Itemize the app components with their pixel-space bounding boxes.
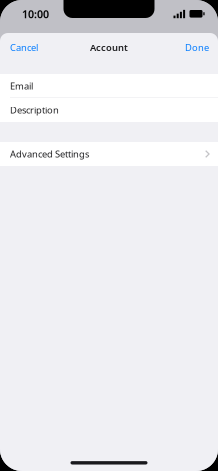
button[interactable]: Advanced Settings (0, 142, 218, 166)
staticText: Description (10, 104, 59, 116)
staticText: Cancel (10, 41, 38, 54)
button[interactable]: Done (176, 35, 218, 60)
button[interactable]: Email (0, 74, 218, 98)
button[interactable]: Cancel (0, 35, 48, 60)
staticText: Advanced Settings (10, 148, 89, 160)
staticText: Email (10, 80, 33, 92)
staticText: Done (185, 41, 209, 54)
staticText: 10:00 (22, 7, 49, 21)
button[interactable]: Description (0, 98, 218, 122)
staticText: Account (90, 41, 128, 54)
